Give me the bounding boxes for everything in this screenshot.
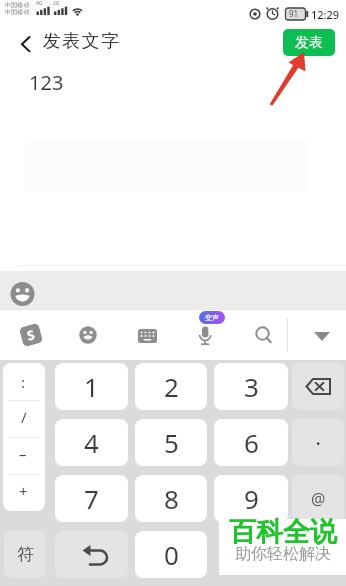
staticText: 5 [164, 425, 179, 460]
button[interactable]: 1 [55, 363, 128, 410]
button[interactable]: 7 [55, 475, 128, 522]
button[interactable]: 5 [135, 419, 207, 466]
button[interactable] [0, 271, 346, 309]
button[interactable]: 发表 [283, 29, 335, 56]
button[interactable]: @ [292, 475, 344, 522]
staticText: · [316, 432, 321, 454]
staticText: 中国移动 [5, 1, 29, 9]
staticText: 发表文字 [42, 30, 120, 53]
staticText: S [25, 325, 37, 345]
staticText: 12:29 [311, 7, 340, 22]
staticText: 0 [164, 537, 179, 572]
staticText: 9 [244, 481, 259, 516]
staticText: @ [311, 488, 326, 510]
staticText: 2G [53, 0, 60, 7]
staticText: 百科全说 [229, 515, 337, 549]
button[interactable] [292, 363, 344, 410]
button[interactable]: 6 [214, 419, 288, 466]
staticText: 3 [244, 369, 259, 404]
staticText: 2 [164, 369, 179, 404]
button[interactable]: S [19, 323, 43, 347]
button[interactable]: 4 [55, 419, 128, 466]
staticText: – [19, 444, 27, 464]
staticText: 6 [244, 425, 259, 460]
staticText: 符 [17, 544, 34, 565]
button[interactable]: 3 [214, 363, 288, 410]
staticText: 发表 [295, 34, 323, 52]
staticText: / [21, 407, 27, 427]
button[interactable]: · [292, 419, 344, 466]
staticText: 7 [84, 481, 99, 516]
staticText: 8 [164, 481, 179, 516]
button[interactable]: 0 [135, 531, 207, 578]
button[interactable]: 9 [214, 475, 288, 522]
staticText: : [21, 372, 26, 392]
button[interactable] [3, 363, 45, 511]
staticText: 4 [84, 425, 99, 460]
staticText: 1 [84, 369, 99, 404]
staticText: 4G [36, 0, 43, 7]
staticText: 助你轻松解决 [235, 544, 331, 564]
staticText: 91 [289, 8, 299, 19]
staticText: 123 [29, 69, 64, 96]
staticText: 中国移动 [5, 8, 29, 16]
button[interactable]: 符 [4, 531, 46, 578]
button[interactable]: 8 [135, 475, 207, 522]
staticText: + [19, 481, 28, 501]
staticText: 变声 [205, 313, 219, 322]
button[interactable] [55, 531, 128, 578]
button[interactable]: 2 [135, 363, 207, 410]
